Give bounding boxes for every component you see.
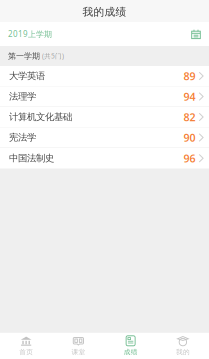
staticText: 法理学: [9, 91, 36, 102]
staticText: 成绩: [124, 348, 138, 356]
button[interactable]: 我的: [157, 333, 209, 359]
staticText: 课堂: [71, 348, 85, 356]
button[interactable]: 成绩: [104, 333, 157, 359]
button[interactable]: 课堂: [52, 333, 104, 359]
staticText: (共5门): [42, 52, 64, 60]
staticText: 2019上学期: [8, 29, 52, 39]
staticText: 首页: [19, 348, 33, 356]
staticText: 90: [183, 130, 195, 145]
staticText: 大学英语: [9, 70, 45, 82]
button[interactable]: 宪法学: [0, 127, 209, 148]
button[interactable]: 法理学: [0, 86, 209, 107]
staticText: 我的: [176, 348, 190, 356]
staticText: 96: [183, 151, 195, 165]
staticText: 89: [183, 69, 195, 83]
staticText: 第一学期: [8, 51, 40, 61]
staticText: 82: [183, 110, 195, 124]
staticText: 中国法制史: [9, 152, 54, 164]
button[interactable]: 中国法制史: [0, 148, 209, 168]
staticText: 我的成绩: [82, 5, 126, 18]
button[interactable]: 大学英语: [0, 66, 209, 86]
staticText: 宪法学: [9, 132, 36, 143]
staticText: 94: [183, 89, 195, 104]
button[interactable]: 计算机文化基础: [0, 107, 209, 127]
staticText: 计算机文化基础: [9, 111, 72, 123]
button[interactable]: 2019上学期: [0, 22, 209, 46]
button[interactable]: 首页: [0, 333, 52, 359]
